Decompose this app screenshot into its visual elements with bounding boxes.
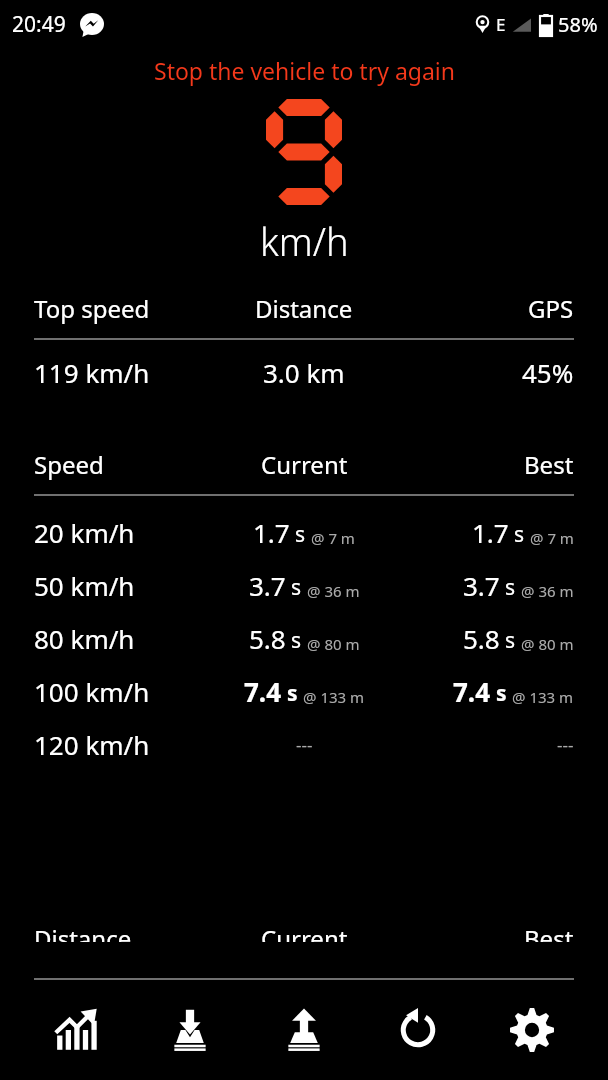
- staticText: s: [505, 573, 516, 602]
- staticText: @ 36 m: [307, 581, 360, 601]
- staticText: @ 80 m: [521, 634, 574, 654]
- staticText: 3.7: [463, 568, 500, 603]
- staticText: 3.7: [249, 568, 286, 603]
- button[interactable]: Statistics: [38, 992, 114, 1068]
- staticText: 20:49: [12, 10, 66, 39]
- staticText: Current: [261, 448, 348, 481]
- staticText: Distance: [34, 922, 132, 942]
- staticText: 20 km/h: [34, 515, 135, 550]
- staticText: @ 133 m: [303, 687, 365, 707]
- staticText: 5.8: [249, 621, 286, 656]
- staticText: 1.7: [253, 515, 290, 550]
- staticText: @ 133 m: [512, 687, 574, 707]
- staticText: s: [291, 573, 302, 602]
- staticText: 119 km/h: [34, 355, 150, 390]
- staticText: @ 7 m: [311, 528, 355, 548]
- staticText: @ 80 m: [307, 634, 360, 654]
- staticText: s: [514, 520, 525, 549]
- button[interactable]: 50 km/h: [34, 559, 574, 612]
- button[interactable]: 100 km/h: [34, 665, 574, 718]
- staticText: 1.7: [472, 515, 509, 550]
- staticText: ---: [557, 733, 574, 756]
- staticText: Distance: [255, 292, 353, 325]
- staticText: 7.4: [453, 674, 491, 709]
- button[interactable]: Export: [266, 992, 342, 1068]
- staticText: 80 km/h: [34, 621, 135, 656]
- button[interactable]: 20 km/h: [34, 506, 574, 559]
- staticText: s: [287, 679, 298, 708]
- staticText: s: [291, 626, 302, 655]
- staticText: 120 km/h: [34, 727, 150, 762]
- staticText: Speed: [34, 448, 104, 481]
- staticText: Top speed: [34, 292, 150, 325]
- staticText: ---: [296, 733, 313, 756]
- staticText: 5.8: [463, 621, 500, 656]
- button[interactable]: 80 km/h: [34, 612, 574, 665]
- staticText: 100 km/h: [34, 674, 150, 709]
- button[interactable]: Reset: [380, 992, 456, 1068]
- staticText: Best: [524, 448, 574, 481]
- staticText: E: [496, 13, 506, 36]
- staticText: 50 km/h: [34, 568, 135, 603]
- button[interactable]: 120 km/h: [34, 718, 574, 771]
- staticText: 45%: [522, 355, 574, 390]
- staticText: s: [496, 679, 507, 708]
- staticText: Best: [524, 922, 574, 942]
- staticText: 3.0 km: [263, 355, 345, 390]
- staticText: Current: [261, 922, 348, 942]
- staticText: km/h: [260, 215, 349, 267]
- staticText: @ 7 m: [530, 528, 574, 548]
- staticText: 7.4: [244, 674, 282, 709]
- staticText: 58%: [558, 11, 598, 38]
- staticText: s: [505, 626, 516, 655]
- button[interactable]: Import: [152, 992, 228, 1068]
- staticText: GPS: [528, 292, 574, 325]
- staticText: s: [295, 520, 306, 549]
- staticText: Stop the vehicle to try again: [154, 55, 455, 86]
- staticText: @ 36 m: [521, 581, 574, 601]
- button[interactable]: Settings: [494, 992, 570, 1068]
